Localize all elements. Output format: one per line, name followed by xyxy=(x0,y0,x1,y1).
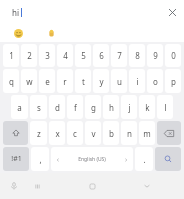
button[interactable]: Emoji suggestion 1 xyxy=(11,26,25,40)
button[interactable]: u xyxy=(111,69,127,93)
staticText: 8 xyxy=(135,50,140,61)
staticText: 3 xyxy=(45,50,50,61)
staticText: o xyxy=(153,76,158,87)
staticText: e xyxy=(45,76,50,87)
button[interactable]: Search xyxy=(155,147,181,171)
staticText: 2 xyxy=(27,50,32,61)
staticText: c xyxy=(73,128,77,139)
button[interactable]: . xyxy=(135,147,153,171)
button[interactable]: Clear text xyxy=(162,3,182,21)
staticText: d xyxy=(55,102,60,113)
button[interactable]: 5 xyxy=(75,44,91,67)
button[interactable]: 8 xyxy=(129,44,145,67)
button[interactable]: 4 xyxy=(57,44,73,67)
button[interactable]: 2 xyxy=(21,44,37,67)
button[interactable]: k xyxy=(139,95,155,119)
button[interactable]: o xyxy=(147,69,163,93)
button[interactable]: x xyxy=(49,121,65,145)
button[interactable]: w xyxy=(21,69,37,93)
button[interactable]: g xyxy=(85,95,101,119)
staticText: , xyxy=(39,154,42,165)
staticText: 6 xyxy=(99,50,104,61)
button[interactable]: 0 xyxy=(165,44,181,67)
staticText: 5 xyxy=(81,50,86,61)
button[interactable]: v xyxy=(85,121,101,145)
staticText: z xyxy=(37,128,41,139)
button[interactable]: , xyxy=(31,147,49,171)
button[interactable]: q xyxy=(3,69,19,93)
staticText: q xyxy=(9,76,14,87)
staticText: h xyxy=(109,102,114,113)
button[interactable]: Voice input xyxy=(6,178,22,194)
button[interactable]: f xyxy=(67,95,83,119)
button[interactable]: hi xyxy=(4,3,162,21)
button[interactable]: b xyxy=(103,121,119,145)
staticText: b xyxy=(109,128,114,139)
button[interactable]: !#1 xyxy=(3,147,29,171)
staticText: !#1 xyxy=(11,154,22,164)
button[interactable]: 1 xyxy=(3,44,19,67)
staticText: v xyxy=(91,128,96,139)
button[interactable]: h xyxy=(103,95,119,119)
button[interactable]: c xyxy=(67,121,83,145)
staticText: g xyxy=(91,102,96,113)
button[interactable]: n xyxy=(121,121,137,145)
button[interactable]: s xyxy=(30,95,47,119)
button[interactable]: z xyxy=(30,121,47,145)
button[interactable]: Backspace xyxy=(157,121,181,145)
button[interactable]: p xyxy=(165,69,181,93)
button[interactable]: e xyxy=(39,69,55,93)
button[interactable]: m xyxy=(139,121,155,145)
button[interactable]: t xyxy=(75,69,91,93)
button[interactable]: 3 xyxy=(39,44,55,67)
staticText: n xyxy=(127,128,132,139)
staticText: s xyxy=(37,102,41,113)
button[interactable]: 6 xyxy=(93,44,109,67)
staticText: 1 xyxy=(9,50,14,61)
button[interactable]: 9 xyxy=(147,44,163,67)
button[interactable]: Recent apps xyxy=(27,176,47,196)
staticText: 0 xyxy=(171,50,176,61)
staticText: m xyxy=(143,128,151,139)
button[interactable]: j xyxy=(121,95,137,119)
staticText: 9 xyxy=(153,50,158,61)
staticText: y xyxy=(99,76,104,87)
button[interactable]: r xyxy=(57,69,73,93)
button[interactable]: English (US) xyxy=(51,147,133,171)
staticText: j xyxy=(128,102,131,113)
staticText: u xyxy=(117,76,122,87)
button[interactable]: a xyxy=(11,95,28,119)
staticText: w xyxy=(26,76,33,87)
staticText: English (US) xyxy=(78,156,106,163)
staticText: i xyxy=(136,76,139,87)
staticText: hi xyxy=(12,7,20,18)
button[interactable]: Shift xyxy=(3,121,28,145)
staticText: l xyxy=(164,102,167,113)
button[interactable]: Home xyxy=(82,176,102,196)
staticText: 7 xyxy=(117,50,122,61)
staticText: 4 xyxy=(63,50,68,61)
staticText: p xyxy=(171,76,176,87)
staticText: f xyxy=(74,102,77,113)
staticText: k xyxy=(145,102,150,113)
button[interactable]: d xyxy=(49,95,65,119)
button[interactable]: Hide keyboard xyxy=(137,176,157,196)
staticText: t xyxy=(82,76,85,87)
staticText: . xyxy=(143,154,146,165)
staticText: x xyxy=(55,128,60,139)
button[interactable]: 7 xyxy=(111,44,127,67)
button[interactable]: i xyxy=(129,69,145,93)
staticText: a xyxy=(17,102,22,113)
button[interactable]: l xyxy=(157,95,173,119)
button[interactable]: y xyxy=(93,69,109,93)
staticText: r xyxy=(63,76,67,87)
button[interactable]: Emoji suggestion 2 xyxy=(44,26,58,40)
